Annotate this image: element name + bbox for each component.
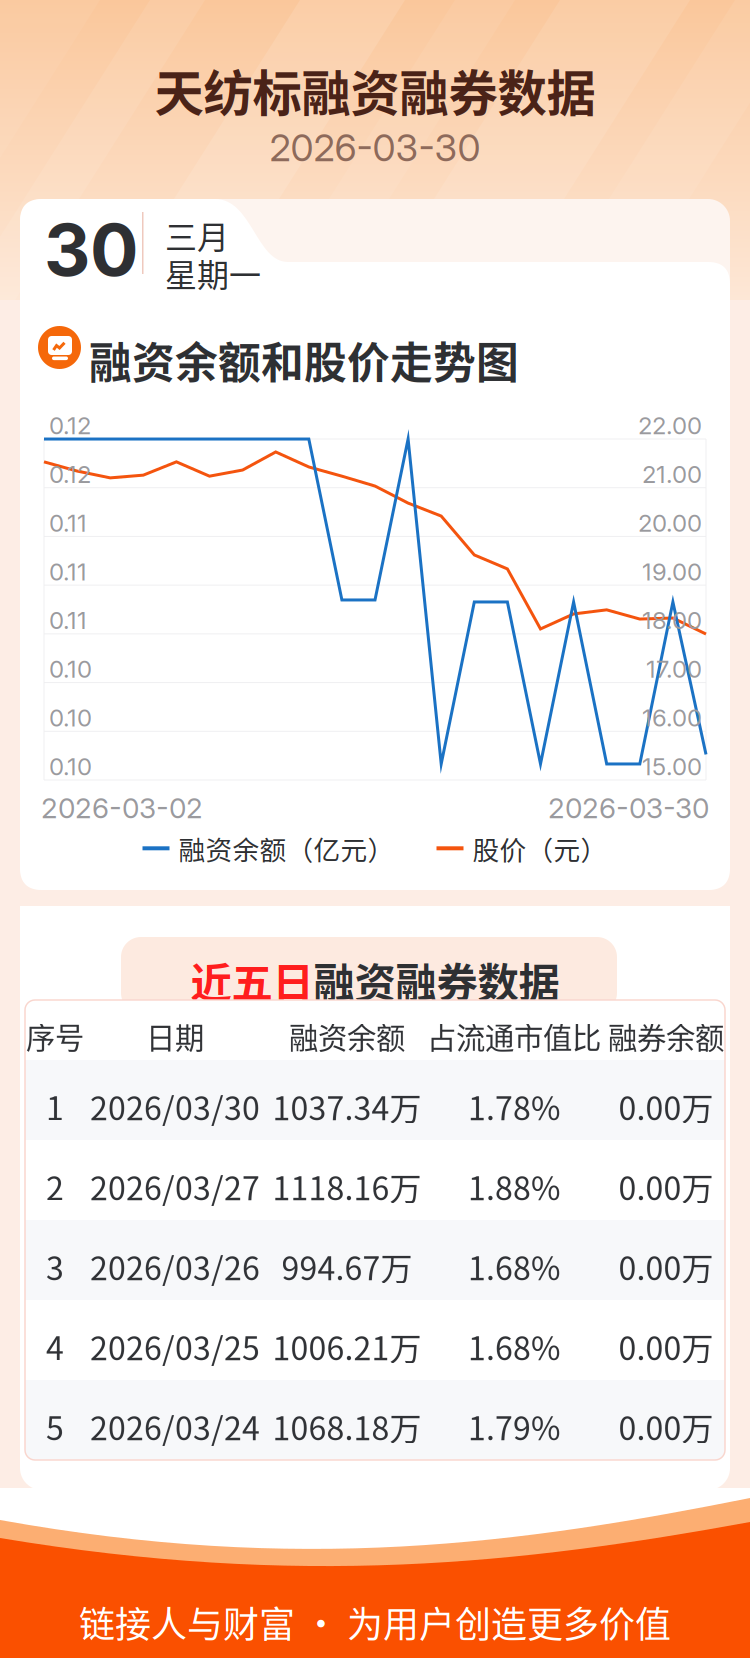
staticText: 0.11 xyxy=(49,508,87,537)
staticText: 1068.18万 xyxy=(272,1403,421,1449)
staticText: 近五日 xyxy=(190,950,313,1010)
staticText: 2026-03-02 xyxy=(41,791,203,825)
staticText: 0.00万 xyxy=(618,1323,713,1369)
staticText: 0.10 xyxy=(49,703,92,732)
staticText: 0.12 xyxy=(49,460,91,489)
staticText: 2026/03/26 xyxy=(90,1243,260,1289)
staticText: 2026-03-30 xyxy=(548,791,709,825)
staticText: 占流通市值比 xyxy=(427,1015,601,1057)
staticText: 融资融券数据 xyxy=(313,950,559,1010)
staticText: 1.68% xyxy=(468,1243,560,1289)
staticText: 1.88% xyxy=(468,1163,560,1209)
staticText: 0.10 xyxy=(49,752,92,781)
staticText: 股价（元） xyxy=(472,829,607,868)
staticText: 0.11 xyxy=(49,606,87,635)
staticText: 0.11 xyxy=(49,557,87,586)
staticText: 三月 xyxy=(165,212,229,258)
staticText: 4 xyxy=(46,1323,64,1369)
staticText: 1.68% xyxy=(468,1323,560,1369)
staticText: 融券余额 xyxy=(608,1015,724,1057)
staticText: 1006.21万 xyxy=(272,1323,421,1369)
staticText: 2026/03/30 xyxy=(90,1083,260,1129)
staticText: 2026/03/25 xyxy=(90,1323,260,1369)
staticText: 融资余额（亿元） xyxy=(178,829,394,868)
staticText: 0.12 xyxy=(49,411,91,440)
staticText: 序号 xyxy=(26,1015,84,1057)
staticText: 17.00 xyxy=(646,655,702,684)
staticText: 3 xyxy=(46,1243,64,1289)
staticText: 1037.34万 xyxy=(272,1083,421,1129)
staticText: 22.00 xyxy=(638,411,702,440)
staticText: 1 xyxy=(46,1083,64,1129)
staticText: 30 xyxy=(44,206,139,293)
staticText: 0.10 xyxy=(49,655,92,684)
staticText: 16.00 xyxy=(642,703,702,732)
staticText: 链接人与财富 · 为用户创造更多价值 xyxy=(79,1596,671,1648)
staticText: 0.00万 xyxy=(618,1403,713,1449)
staticText: 2 xyxy=(46,1163,64,1209)
staticText: 19.00 xyxy=(642,557,702,586)
staticText: 21.00 xyxy=(642,460,702,489)
staticText: 15.00 xyxy=(642,752,702,781)
staticText: 18.00 xyxy=(642,606,702,635)
staticText: 天纺标融资融券数据 xyxy=(154,54,595,125)
staticText: 融资余额 xyxy=(289,1015,405,1057)
staticText: 融资余额和股价走势图 xyxy=(89,329,519,391)
staticText: 日期 xyxy=(146,1015,204,1057)
staticText: 星期一 xyxy=(165,250,261,296)
staticText: 2026-03-30 xyxy=(269,125,480,170)
staticText: 1118.16万 xyxy=(272,1163,421,1209)
staticText: 2026/03/24 xyxy=(90,1403,260,1449)
staticText: 1.78% xyxy=(468,1083,560,1129)
staticText: 20.00 xyxy=(638,508,702,537)
staticText: 1.79% xyxy=(468,1403,560,1449)
staticText: 0.00万 xyxy=(618,1163,713,1209)
staticText: 5 xyxy=(46,1403,64,1449)
staticText: 994.67万 xyxy=(281,1243,412,1289)
staticText: 2026/03/27 xyxy=(90,1163,260,1209)
staticText: 0.00万 xyxy=(618,1083,713,1129)
staticText: 0.00万 xyxy=(618,1243,713,1289)
